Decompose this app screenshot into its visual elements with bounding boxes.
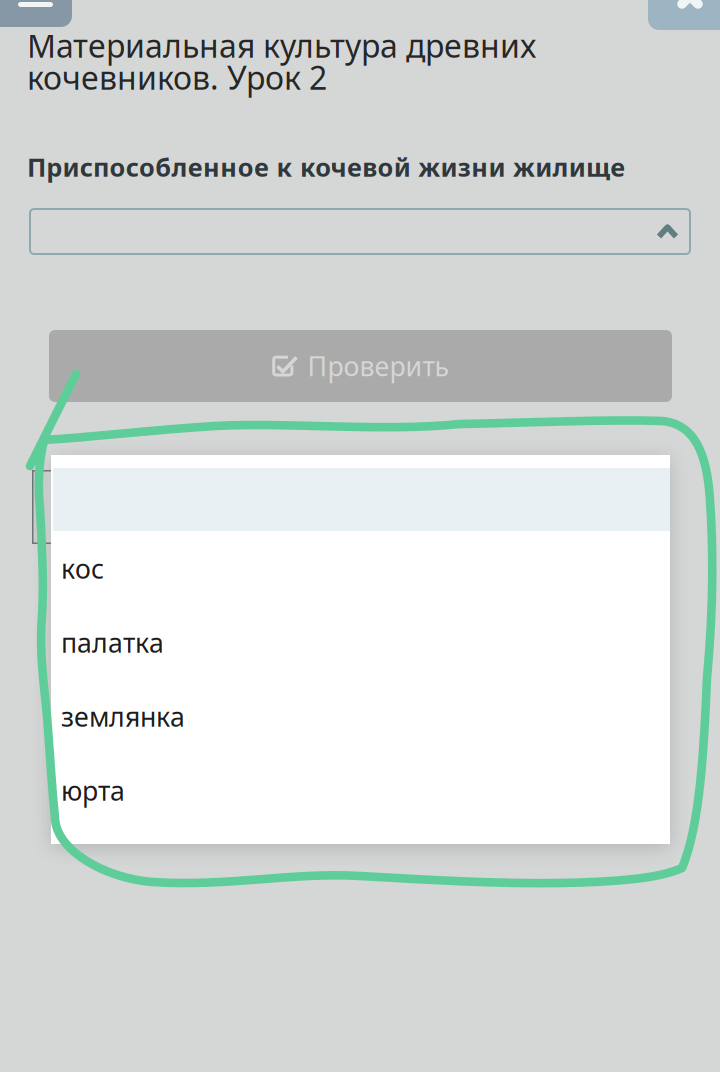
button[interactable]: Свернуть — [0, 0, 72, 27]
button[interactable]: юрта — [51, 753, 670, 827]
button[interactable]: Проверить — [49, 330, 672, 402]
staticText: юрта — [61, 773, 125, 808]
button[interactable]: землянка — [51, 679, 670, 753]
button[interactable]: кос — [51, 531, 670, 605]
button[interactable]: палатка — [51, 605, 670, 679]
button[interactable]: Пустой вариант — [51, 455, 670, 531]
staticText: Проверить — [307, 348, 449, 384]
staticText: кочевников. Урок 2 — [27, 56, 327, 98]
staticText: Материальная культура древних — [27, 24, 536, 66]
staticText: землянка — [61, 699, 185, 734]
button[interactable]: Выбрать ответ — [30, 209, 690, 254]
button[interactable]: Закрыть — [648, 0, 720, 30]
staticText: Приспособленное к кочевой жизни жилище — [27, 150, 625, 184]
staticText: кос — [61, 551, 104, 586]
staticText: палатка — [61, 625, 164, 660]
